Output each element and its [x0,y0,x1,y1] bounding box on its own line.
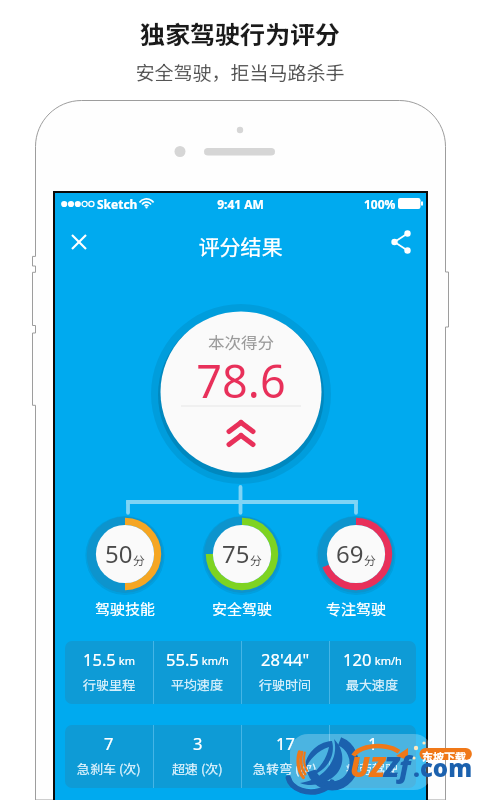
staticText: 69 [336,537,364,570]
staticText: 17 [276,732,295,754]
staticText: Sketch [97,196,138,212]
staticText: Zf [384,747,411,785]
staticText: km/h [199,653,229,668]
staticText: 28'44" [261,648,310,670]
staticText: 78.6 [150,350,332,411]
staticText: 行驶时间 [259,675,312,694]
staticText: 急转弯 (次) [253,759,317,778]
staticText: 独家驾驶行为评分 [0,15,480,51]
staticText: 55.5 [166,648,199,670]
staticText: 驾驶技能 [65,598,185,620]
staticText: 疲劳驾驶 [346,759,399,778]
staticText: 安全驾驶 [182,598,302,620]
staticText: 分 [364,551,377,568]
staticText: 3 [193,732,203,754]
staticText: UZ [350,747,385,785]
staticText: 100% [364,196,396,212]
button[interactable]: Share [379,220,423,264]
staticText: 行驶里程 [83,675,136,694]
staticText: 最大速度 [346,675,399,694]
staticText: 安全驾驶，拒当马路杀手 [0,58,480,86]
staticText: 评分结果 [55,231,426,261]
staticText: .com [413,751,473,784]
staticText: 分 [133,551,146,568]
staticText: 平均速度 [171,675,224,694]
staticText: 7 [104,732,114,754]
staticText: 超速 (次) [172,759,223,778]
staticText: 15.5 [83,648,116,670]
staticText: 120 [343,648,372,670]
staticText: 本次得分 [150,330,332,354]
staticText: 东坡下载 [422,748,466,764]
staticText: 分 [250,551,263,568]
staticText: 50 [105,537,133,570]
staticText: 75 [222,537,250,570]
button[interactable]: Close [57,220,101,264]
staticText: km/h [372,653,402,668]
staticText: 急刹车 (次) [77,759,141,778]
staticText: 专注驾驶 [296,598,416,620]
staticText: km [116,653,136,668]
staticText: 1 [368,732,378,754]
staticText: 9:41 AM [55,196,426,212]
